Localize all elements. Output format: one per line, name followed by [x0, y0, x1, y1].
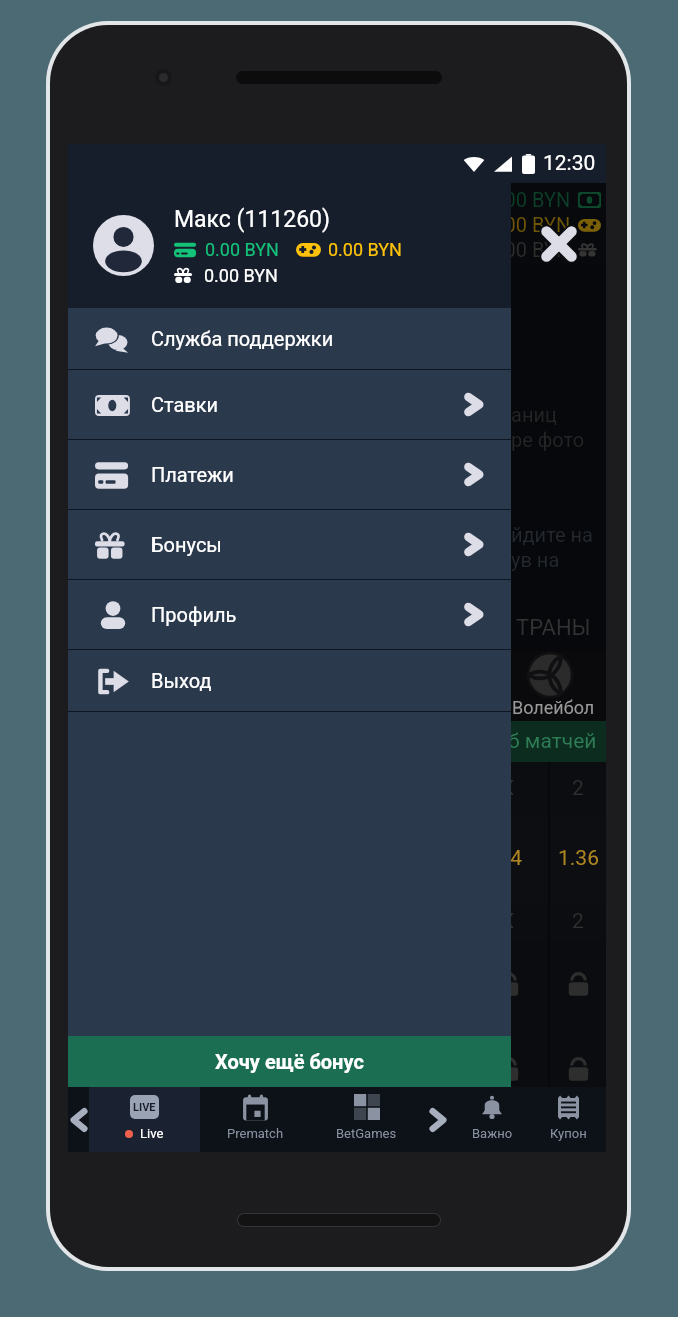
staticText: 12:30 [543, 151, 596, 176]
staticText: 0.00 BYN [488, 188, 571, 211]
staticText: 0.00 BYN [204, 265, 278, 286]
staticText: 2 [572, 776, 584, 801]
button[interactable]: Ставки [68, 370, 511, 439]
staticText: 0.00 BYN [488, 238, 571, 261]
staticText: Бонусы [151, 533, 222, 556]
staticText: аниц [511, 403, 557, 426]
staticText: Профиль [151, 603, 237, 626]
staticText: BetGames [336, 1126, 397, 1141]
button[interactable]: Scroll tabs right [422, 1087, 454, 1152]
button[interactable]: BetGames [311, 1087, 422, 1152]
staticText: Важно [472, 1126, 513, 1141]
staticText: Платежи [151, 463, 234, 486]
button[interactable]: Платежи [68, 440, 511, 509]
staticText: Макс (111260) [174, 206, 331, 233]
button[interactable]: Профиль [68, 580, 511, 649]
staticText: Prematch [227, 1126, 284, 1141]
staticText: X [501, 776, 515, 801]
staticText: б матчей [508, 729, 597, 754]
staticText: 0.00 BYN [328, 239, 402, 260]
staticText: ТРАНЫ [516, 615, 591, 641]
staticText: LIVE [133, 1101, 156, 1114]
button[interactable]: Close menu [534, 219, 584, 269]
staticText: Live [140, 1126, 164, 1141]
button[interactable]: LIVE [89, 1087, 200, 1152]
staticText: Купон [550, 1126, 587, 1141]
staticText: ув на [511, 548, 560, 571]
button[interactable]: Scroll tabs left [68, 1087, 89, 1152]
staticText: ре фото [511, 428, 585, 451]
staticText: Волейбол [512, 697, 595, 718]
button[interactable]: Купон [530, 1087, 606, 1152]
button[interactable]: Служба поддержки [68, 308, 511, 369]
button[interactable]: Важно [454, 1087, 530, 1152]
staticText: Выход [151, 669, 212, 692]
button[interactable]: Выход [68, 650, 511, 711]
staticText: Хочу ещё бонус [215, 1050, 364, 1073]
staticText: Служба поддержки [151, 327, 334, 350]
button[interactable]: Бонусы [68, 510, 511, 579]
button[interactable]: Хочу ещё бонус [68, 1036, 511, 1087]
staticText: 1.36 [558, 846, 599, 871]
staticText: .04 [493, 846, 523, 871]
staticText: Ставки [151, 393, 219, 416]
staticText: 0.00 BYN [488, 213, 571, 236]
staticText: йдите на [511, 523, 593, 546]
staticText: X [501, 909, 515, 934]
staticText: 0.00 BYN [205, 239, 279, 260]
staticText: 2 [572, 909, 584, 934]
button[interactable]: Prematch [200, 1087, 311, 1152]
